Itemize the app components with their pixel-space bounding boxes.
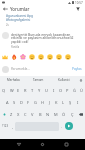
staticText: B bbox=[39, 112, 42, 117]
button[interactable]: E bbox=[15, 84, 22, 96]
button[interactable]: Emoji reaction bbox=[63, 52, 72, 62]
staticText: Ö bbox=[62, 112, 66, 117]
button[interactable]: Home bbox=[37, 139, 48, 150]
button[interactable]: Ö bbox=[60, 108, 68, 120]
button[interactable]: J bbox=[46, 96, 53, 108]
staticText: C bbox=[24, 112, 27, 117]
staticText: P bbox=[66, 88, 69, 93]
staticText: #gununkaresi #pg bbox=[6, 14, 33, 18]
staticText: T bbox=[31, 88, 34, 93]
staticText: V bbox=[31, 112, 34, 117]
staticText: X bbox=[17, 112, 20, 117]
staticText: K bbox=[55, 100, 58, 105]
button[interactable]: O bbox=[57, 84, 64, 96]
button[interactable]: ?123 bbox=[0, 120, 11, 132]
staticText: Kullanici bbox=[58, 78, 70, 82]
staticText: O bbox=[59, 88, 63, 93]
button[interactable]: I bbox=[74, 96, 81, 108]
button[interactable]: B bbox=[36, 108, 44, 120]
button[interactable]: I bbox=[50, 84, 57, 96]
button[interactable]: Voice input bbox=[76, 76, 85, 84]
staticText: Paylas bbox=[72, 67, 82, 71]
button[interactable]: Kullanici bbox=[51, 76, 76, 84]
button[interactable]: Q bbox=[0, 84, 8, 96]
button[interactable]: Paylas bbox=[71, 65, 83, 73]
staticText: Yanitla bbox=[11, 45, 20, 49]
button[interactable]: G bbox=[32, 96, 39, 108]
staticText: U bbox=[45, 88, 48, 93]
button[interactable]: Ş bbox=[67, 96, 74, 108]
button[interactable]: V bbox=[29, 108, 36, 120]
button[interactable]: L bbox=[60, 96, 67, 108]
staticText: R bbox=[24, 88, 27, 93]
staticText: Ş bbox=[69, 100, 72, 105]
staticText: J bbox=[49, 100, 51, 105]
button[interactable]: Send bbox=[65, 122, 73, 130]
button[interactable]: W bbox=[8, 84, 15, 96]
button[interactable]: H bbox=[39, 96, 46, 108]
staticText: F bbox=[27, 100, 30, 105]
button[interactable]: Ğ bbox=[71, 84, 78, 96]
button[interactable]: Merhaba bbox=[0, 76, 26, 84]
staticText: I bbox=[77, 100, 79, 105]
button[interactable]: D bbox=[18, 96, 25, 108]
staticText: Ü bbox=[80, 88, 83, 93]
staticText: 10:57 bbox=[75, 1, 83, 5]
button[interactable]: U bbox=[43, 84, 50, 96]
button[interactable]: Emoji reaction bbox=[54, 52, 63, 62]
button[interactable]: Back bbox=[0, 5, 10, 13]
staticText: #fotografgalerisi bbox=[6, 18, 31, 22]
staticText: Ç bbox=[71, 112, 74, 117]
button[interactable]: T bbox=[29, 84, 36, 96]
staticText: . bbox=[61, 124, 63, 129]
staticText: Q bbox=[2, 88, 6, 93]
staticText: Yorumlar bbox=[10, 6, 30, 12]
button[interactable]: M bbox=[52, 108, 60, 120]
button[interactable]: N bbox=[44, 108, 52, 120]
button[interactable]: Backspace bbox=[76, 108, 85, 120]
staticText: Ğ bbox=[73, 88, 76, 93]
button[interactable]: Emoji reaction bbox=[0, 52, 9, 62]
button[interactable]: Shift bbox=[0, 108, 8, 120]
button[interactable]: Recents bbox=[61, 139, 72, 150]
staticText: A bbox=[6, 100, 9, 105]
button[interactable]: P bbox=[64, 84, 71, 96]
button[interactable]: S bbox=[11, 96, 18, 108]
staticText: G bbox=[34, 100, 37, 105]
staticText: H bbox=[41, 100, 44, 105]
button[interactable]: Ü bbox=[78, 84, 85, 96]
staticText: M bbox=[54, 112, 58, 117]
staticText: W bbox=[10, 88, 14, 93]
staticText: destiyerttt Bunuda enryok kazandiran, et… bbox=[11, 32, 79, 44]
button[interactable]: Ç bbox=[68, 108, 76, 120]
staticText: S bbox=[13, 100, 16, 105]
staticText: , bbox=[12, 124, 14, 129]
button[interactable]: A bbox=[4, 96, 11, 108]
staticText: Tamam bbox=[33, 78, 44, 82]
button[interactable]: , bbox=[11, 120, 15, 132]
button[interactable]: Emoji reaction bbox=[9, 52, 18, 62]
button[interactable]: Y bbox=[36, 84, 43, 96]
button[interactable]: Filter bbox=[73, 5, 83, 13]
staticText: N bbox=[46, 112, 50, 117]
button[interactable]: C bbox=[22, 108, 29, 120]
button[interactable]: K bbox=[53, 96, 60, 108]
button[interactable]: F bbox=[25, 96, 32, 108]
staticText: Yorum ekle... bbox=[11, 67, 30, 71]
staticText: Y bbox=[38, 88, 41, 93]
button[interactable]: Emoji reaction bbox=[45, 52, 54, 62]
button[interactable]: Emoji reaction bbox=[18, 52, 27, 62]
button[interactable]: X bbox=[15, 108, 22, 120]
staticText: E bbox=[17, 88, 20, 93]
button[interactable]: R bbox=[22, 84, 29, 96]
staticText: I bbox=[53, 88, 55, 93]
button[interactable]: Emoji reaction bbox=[27, 52, 36, 62]
button[interactable]: Z bbox=[8, 108, 15, 120]
button[interactable]: Emoji reaction bbox=[36, 52, 45, 62]
staticText: ?123 bbox=[2, 124, 9, 128]
button[interactable]: Tamam bbox=[26, 76, 51, 84]
staticText: D bbox=[20, 100, 23, 105]
button[interactable]: Back bbox=[13, 139, 24, 150]
